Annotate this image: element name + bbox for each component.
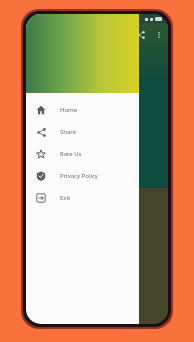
staticText: Privacy Policy [60,172,98,180]
staticText: Home [60,106,78,114]
staticText: Rate Us [60,150,82,158]
staticText: Share [60,128,77,136]
button[interactable]: Rate Us [26,143,139,165]
button[interactable]: Exit [26,187,139,209]
button[interactable]: Home [26,99,139,121]
staticText: Exit [60,194,71,202]
button[interactable]: Share [26,121,139,143]
button[interactable]: Share [134,28,148,42]
button[interactable]: Privacy Policy [26,165,139,187]
button[interactable]: More options [153,29,165,41]
